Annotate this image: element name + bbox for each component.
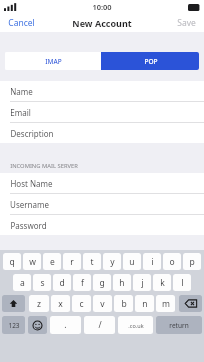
staticText: h <box>119 277 125 289</box>
button[interactable]: z <box>29 295 49 312</box>
button[interactable]: o <box>163 253 181 270</box>
button[interactable]: r <box>63 253 81 270</box>
staticText: return <box>169 321 189 330</box>
button[interactable]: Cancel <box>0 15 43 31</box>
button[interactable]: p <box>183 253 201 270</box>
staticText: j <box>141 277 144 289</box>
staticText: m <box>162 298 170 310</box>
button[interactable]: n <box>135 295 154 312</box>
staticText: z <box>37 298 41 310</box>
button[interactable]: Backspace <box>179 295 202 312</box>
button[interactable]: POP <box>102 52 199 70</box>
staticText: t <box>90 256 94 268</box>
button[interactable]: Description <box>0 122 204 143</box>
button[interactable]: Password <box>0 214 204 235</box>
button[interactable]: j <box>133 274 151 291</box>
staticText: 123 <box>8 321 20 330</box>
button[interactable]: v <box>93 295 112 312</box>
staticText: Username <box>10 199 49 210</box>
staticText: s <box>40 277 45 289</box>
staticText: n <box>142 298 148 310</box>
button[interactable]: q <box>3 253 21 270</box>
button[interactable]: f <box>73 274 91 291</box>
button[interactable]: Save <box>169 15 204 31</box>
button[interactable]: Name <box>0 81 204 101</box>
button[interactable]: a <box>13 274 31 291</box>
button[interactable]: d <box>53 274 71 291</box>
staticText: v <box>100 298 105 310</box>
button[interactable]: Shift <box>2 295 25 312</box>
staticText: i <box>151 256 154 268</box>
staticText: b <box>121 298 127 310</box>
staticText: p <box>189 256 195 268</box>
staticText: . <box>64 319 67 331</box>
staticText: w <box>29 256 36 268</box>
button[interactable]: k <box>153 274 171 291</box>
button[interactable]: IMAP <box>5 52 101 70</box>
button[interactable]: Emoji <box>28 316 47 334</box>
button[interactable]: c <box>72 295 91 312</box>
staticText: r <box>70 256 74 268</box>
button[interactable]: . <box>50 316 81 334</box>
staticText: k <box>160 277 165 289</box>
button[interactable]: Username <box>0 193 204 214</box>
staticText: Name <box>10 86 33 97</box>
staticText: Save <box>177 17 196 29</box>
button[interactable]: i <box>143 253 161 270</box>
staticText: New Account <box>72 17 132 29</box>
button[interactable]: h <box>113 274 131 291</box>
button[interactable]: 123 <box>2 316 25 334</box>
button[interactable]: x <box>51 295 70 312</box>
button[interactable]: e <box>43 253 61 270</box>
staticText: o <box>169 256 175 268</box>
staticText: q <box>9 256 15 268</box>
staticText: a <box>20 277 25 289</box>
staticText: Email <box>10 107 31 118</box>
staticText: l <box>181 277 184 289</box>
button[interactable]: u <box>123 253 141 270</box>
staticText: d <box>59 277 65 289</box>
button[interactable]: t <box>83 253 101 270</box>
staticText: Description <box>10 128 54 139</box>
button[interactable]: m <box>156 295 175 312</box>
staticText: Host Name <box>10 178 53 189</box>
staticText: / <box>98 319 102 331</box>
button[interactable]: y <box>103 253 121 270</box>
staticText: Cancel <box>8 17 35 29</box>
button[interactable]: Host Name <box>0 173 204 193</box>
staticText: y <box>110 256 115 268</box>
staticText: .co.uk <box>128 322 144 329</box>
button[interactable]: l <box>173 274 191 291</box>
button[interactable]: return <box>156 316 202 334</box>
staticText: g <box>99 277 105 289</box>
staticText: c <box>79 298 84 310</box>
button[interactable]: .co.uk <box>118 316 153 334</box>
button[interactable]: / <box>84 316 115 334</box>
staticText: INCOMING MAIL SERVER <box>10 162 78 170</box>
button[interactable]: Email <box>0 101 204 122</box>
staticText: IMAP <box>45 57 62 66</box>
staticText: f <box>81 277 84 289</box>
button[interactable]: s <box>33 274 51 291</box>
staticText: Password <box>10 220 47 231</box>
button[interactable]: w <box>23 253 41 270</box>
button[interactable]: b <box>114 295 133 312</box>
staticText: POP <box>144 57 158 66</box>
button[interactable]: g <box>93 274 111 291</box>
staticText: x <box>58 298 63 310</box>
staticText: e <box>50 256 55 268</box>
staticText: u <box>129 256 135 268</box>
staticText: 10:00 <box>92 2 112 12</box>
